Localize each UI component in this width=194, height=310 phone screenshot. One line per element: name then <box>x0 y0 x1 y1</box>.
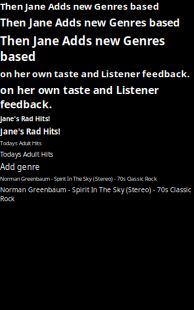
staticText: Then Jane Adds new Genres based <box>0 33 165 64</box>
staticText: Jane's Rad Hits! <box>0 114 50 123</box>
staticText: on her own taste and Listener feedback. <box>0 83 159 111</box>
staticText: Norman Greenbaum - Spirit In The Sky (St… <box>0 185 191 203</box>
staticText: Todays Adult Hits <box>0 140 42 147</box>
staticText: Todays Adult Hits <box>0 150 53 159</box>
staticText: Norman Greenbaum - Spirit In The Sky (St… <box>0 175 157 182</box>
staticText: on her own taste and Listener feedback. <box>0 67 190 80</box>
staticText: Add genre <box>0 162 40 172</box>
staticText: Then Jane Adds new Genres based <box>0 15 180 30</box>
staticText: Jane's Rad Hits! <box>0 126 60 137</box>
staticText: Then Jane Adds new Genres based <box>0 0 159 12</box>
